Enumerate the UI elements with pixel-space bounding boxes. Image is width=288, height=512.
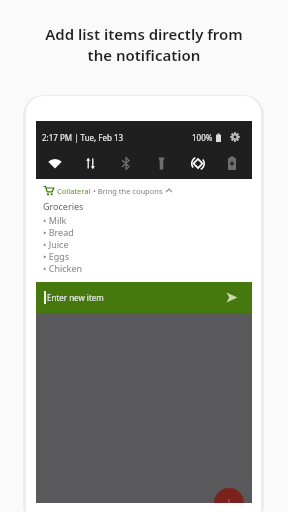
staticText: 2:17 PM | Tue, Feb 13 (42, 132, 124, 143)
staticText: • Bread (43, 226, 74, 238)
button[interactable] (230, 132, 240, 142)
staticText: Add list items directly from the notific… (0, 24, 288, 66)
staticText: 100% (192, 132, 213, 143)
staticText: • Bring the coupons (91, 186, 165, 196)
button[interactable] (36, 143, 252, 179)
staticText: Collateral (57, 186, 91, 196)
staticText: Groceries (43, 200, 84, 212)
button[interactable]: Collateral (43, 185, 173, 196)
button[interactable] (226, 292, 238, 304)
staticText: • Juice (43, 238, 69, 250)
staticText: • Chicken (43, 262, 83, 274)
staticText: • Milk (43, 214, 67, 226)
staticText: • Eggs (43, 250, 70, 262)
staticText: Enter new item (47, 292, 104, 303)
button[interactable] (214, 488, 244, 503)
button[interactable]: Enter new item (36, 282, 252, 313)
